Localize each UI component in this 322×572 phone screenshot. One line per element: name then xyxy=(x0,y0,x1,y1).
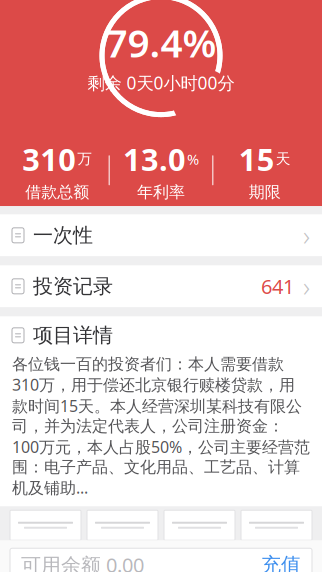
staticText: 310 xyxy=(22,139,76,179)
staticText: 79.4% xyxy=(105,17,216,68)
staticText: 天 xyxy=(276,150,291,168)
staticText: 期限 xyxy=(249,182,281,202)
staticText: 年利率 xyxy=(137,182,185,202)
staticText: › xyxy=(303,218,310,253)
staticText: › xyxy=(303,269,310,304)
staticText: 可用余额 0.00 xyxy=(21,551,144,572)
staticText: 项目详情 xyxy=(33,323,113,348)
staticText: 万 xyxy=(77,150,92,168)
staticText: 剩余 0天0小时00分 xyxy=(87,71,234,94)
staticText: 投资记录 xyxy=(33,274,113,299)
staticText: % xyxy=(187,149,199,169)
staticText: 一次性 xyxy=(33,223,93,248)
staticText: 641 xyxy=(261,273,294,300)
button[interactable]: 一次性 xyxy=(0,214,322,256)
staticText: 各位钱一百的投资者们：本人需要借款310万，用于偿还北京银行赎楼贷款，用款时间1… xyxy=(12,354,310,498)
button[interactable]: 可用余额 0.00 xyxy=(10,548,312,572)
button[interactable]: 投资记录 xyxy=(0,265,322,307)
staticText: 充值 xyxy=(261,552,301,572)
staticText: 15 xyxy=(239,139,275,179)
staticText: 借款总额 xyxy=(25,182,89,202)
staticText: 13.0 xyxy=(123,139,186,179)
